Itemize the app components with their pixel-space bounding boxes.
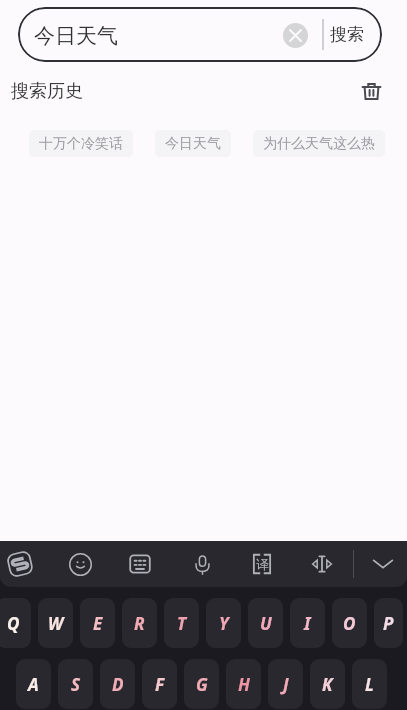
staticText: 十万个冷笑话 [39,135,123,153]
button[interactable]: K [310,659,345,709]
staticText: A [28,673,39,696]
staticText: E [93,612,103,635]
staticText: Q [7,612,20,635]
button[interactable]: O [332,598,367,648]
button[interactable]: R [122,598,157,648]
staticText: I [304,612,311,635]
staticText: G [196,673,208,696]
staticText: W [48,612,64,635]
button[interactable]: Emoji [59,543,101,585]
button[interactable]: Translate [241,543,283,585]
staticText: H [238,673,250,696]
staticText: 今日天气 [165,135,221,153]
button[interactable]: S [58,659,93,709]
button[interactable]: Keyboard layout [119,543,161,585]
button[interactable]: 十万个冷笑话 [29,130,133,157]
staticText: T [177,612,187,635]
staticText: 为什么天气这么热 [263,135,375,153]
button[interactable]: Voice input [181,543,223,585]
staticText: 译 [256,556,269,572]
button[interactable]: P [374,598,403,648]
button[interactable]: 为什么天气这么热 [253,130,385,157]
button[interactable]: W [38,598,73,648]
button[interactable]: Clear text [278,18,312,52]
button[interactable]: U [248,598,283,648]
staticText: P [383,612,394,635]
button[interactable]: L [352,659,387,709]
button[interactable]: A [16,659,51,709]
button[interactable]: T [164,598,199,648]
button[interactable]: I [290,598,325,648]
button[interactable]: Sogou input method [0,543,41,585]
button[interactable]: H [226,659,261,709]
button[interactable]: 今日天气 [155,130,231,157]
button[interactable]: E [80,598,115,648]
button[interactable]: 搜索 [324,7,370,62]
staticText: S [71,673,81,696]
button[interactable]: Hide keyboard [362,543,404,585]
button[interactable]: Y [206,598,241,648]
staticText: O [343,612,356,635]
button[interactable]: G [184,659,219,709]
staticText: 搜索 [330,24,364,45]
staticText: 搜索历史 [11,80,83,103]
staticText: R [134,612,145,635]
staticText: F [155,673,165,696]
staticText: L [365,673,374,696]
staticText: K [322,673,333,696]
staticText: U [260,612,272,635]
staticText: 今日天气 [34,23,278,49]
button[interactable]: Delete search history [356,76,386,106]
button[interactable]: Move cursor [301,543,343,585]
staticText: Y [219,612,229,635]
staticText: D [112,673,124,696]
button[interactable]: J [268,659,303,709]
button[interactable]: F [142,659,177,709]
button[interactable]: 今日天气 [18,7,382,62]
staticText: J [283,673,289,696]
button[interactable]: Q [0,598,31,648]
button[interactable]: D [100,659,135,709]
